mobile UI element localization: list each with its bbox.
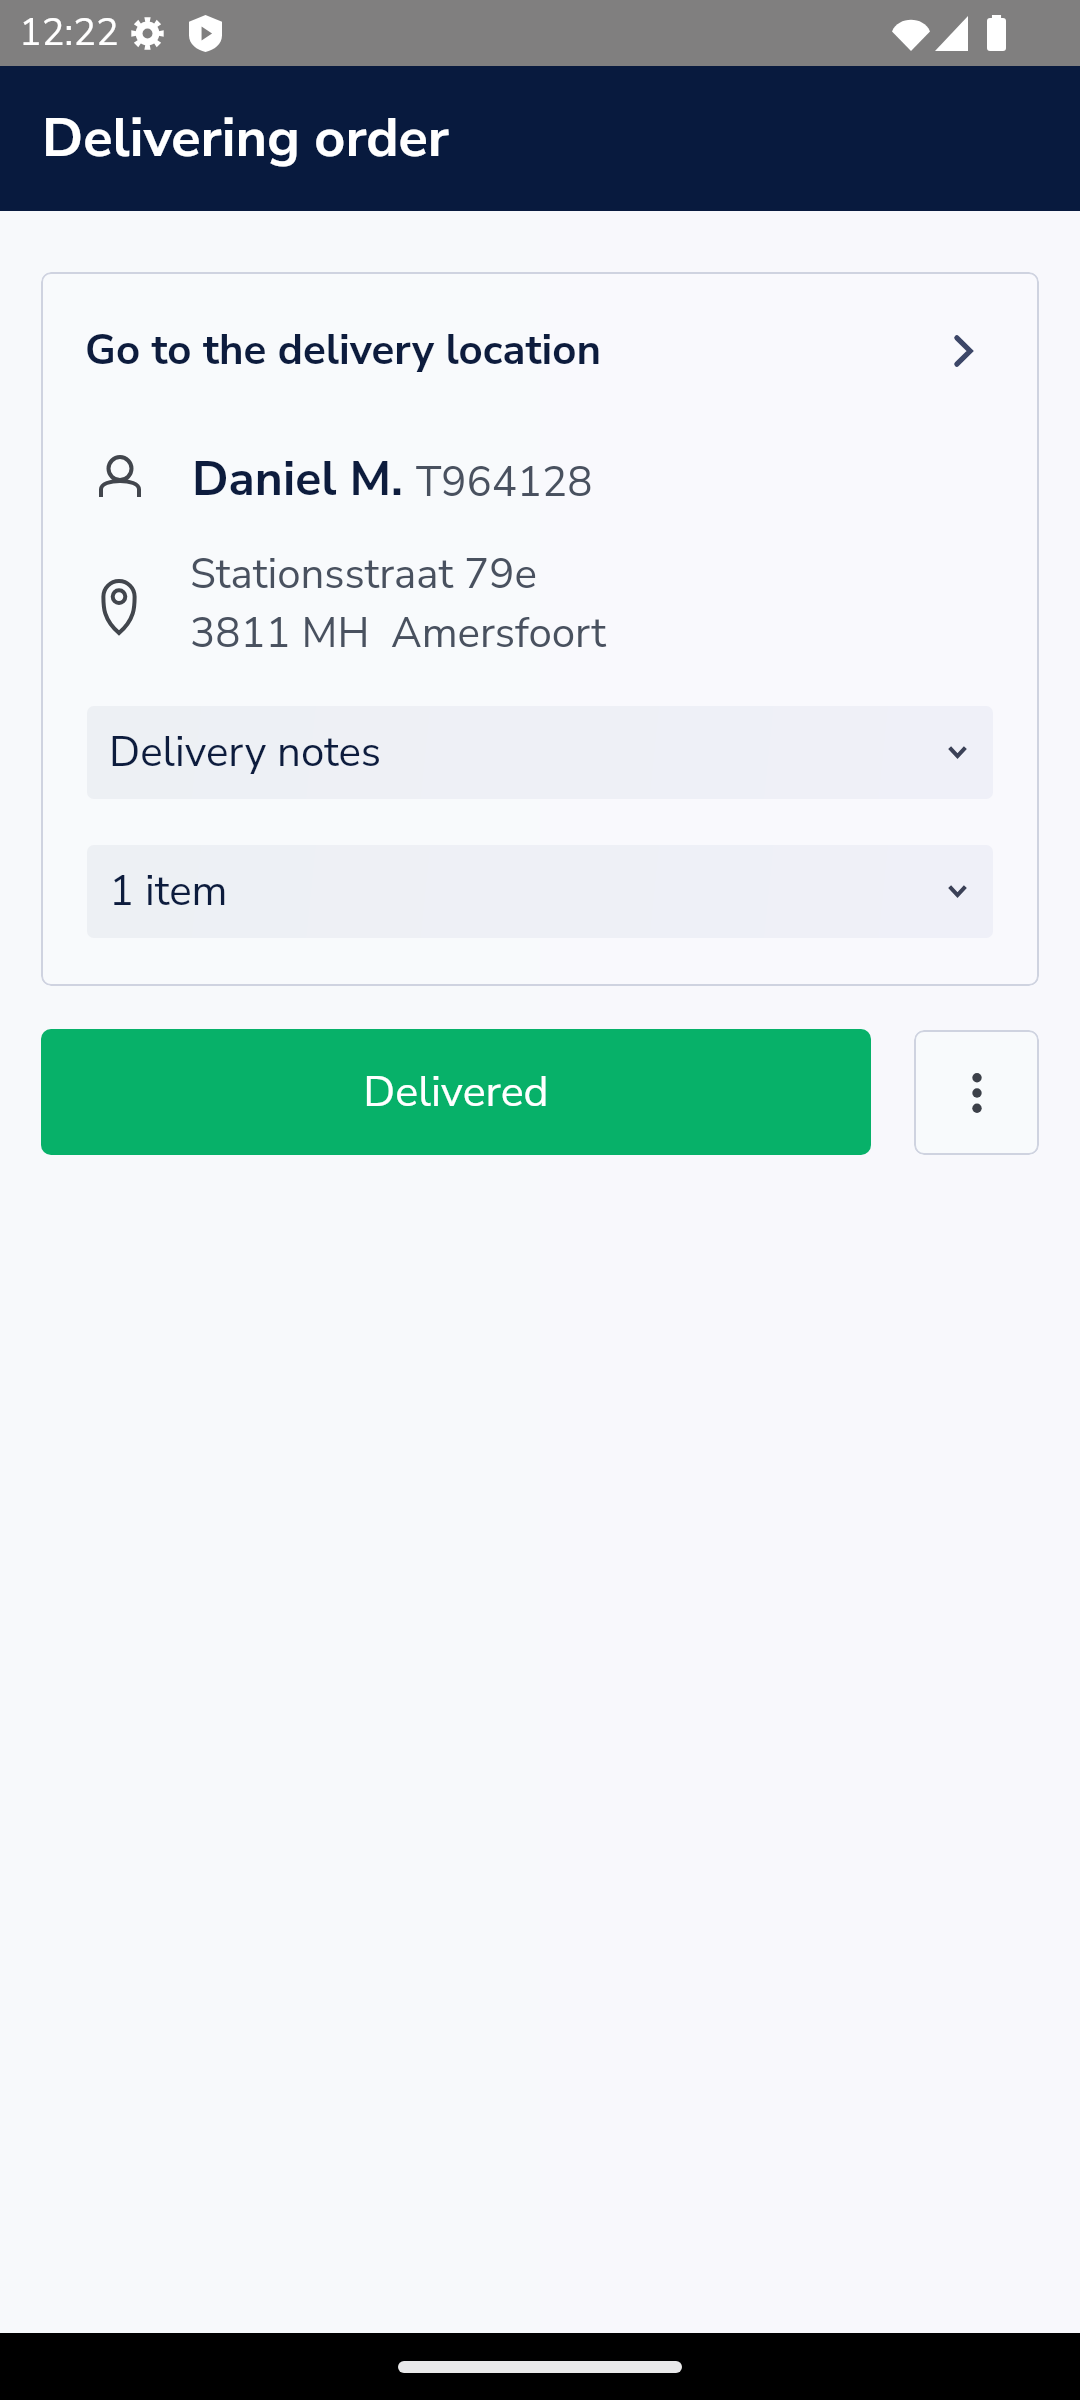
button[interactable]: Delivered <box>41 1029 871 1155</box>
staticText: 1 item <box>109 863 228 920</box>
button[interactable]: More options <box>914 1030 1039 1155</box>
staticText: Stationsstraat 79e <box>190 546 537 603</box>
staticText: Delivering order <box>42 101 449 175</box>
staticText: Go to the delivery location <box>85 322 602 379</box>
staticText: Daniel M. <box>192 446 404 511</box>
button[interactable]: Go to the delivery location <box>41 272 1039 429</box>
button[interactable]: 1 item <box>87 845 993 938</box>
staticText: Delivery notes <box>109 724 382 781</box>
staticText: 12:22 <box>19 7 119 59</box>
staticText: 3811 MH Amersfoort <box>190 605 606 662</box>
staticText: Delivered <box>363 1063 549 1122</box>
staticText: T964128 <box>416 454 593 511</box>
button[interactable]: Delivery notes <box>87 706 993 799</box>
